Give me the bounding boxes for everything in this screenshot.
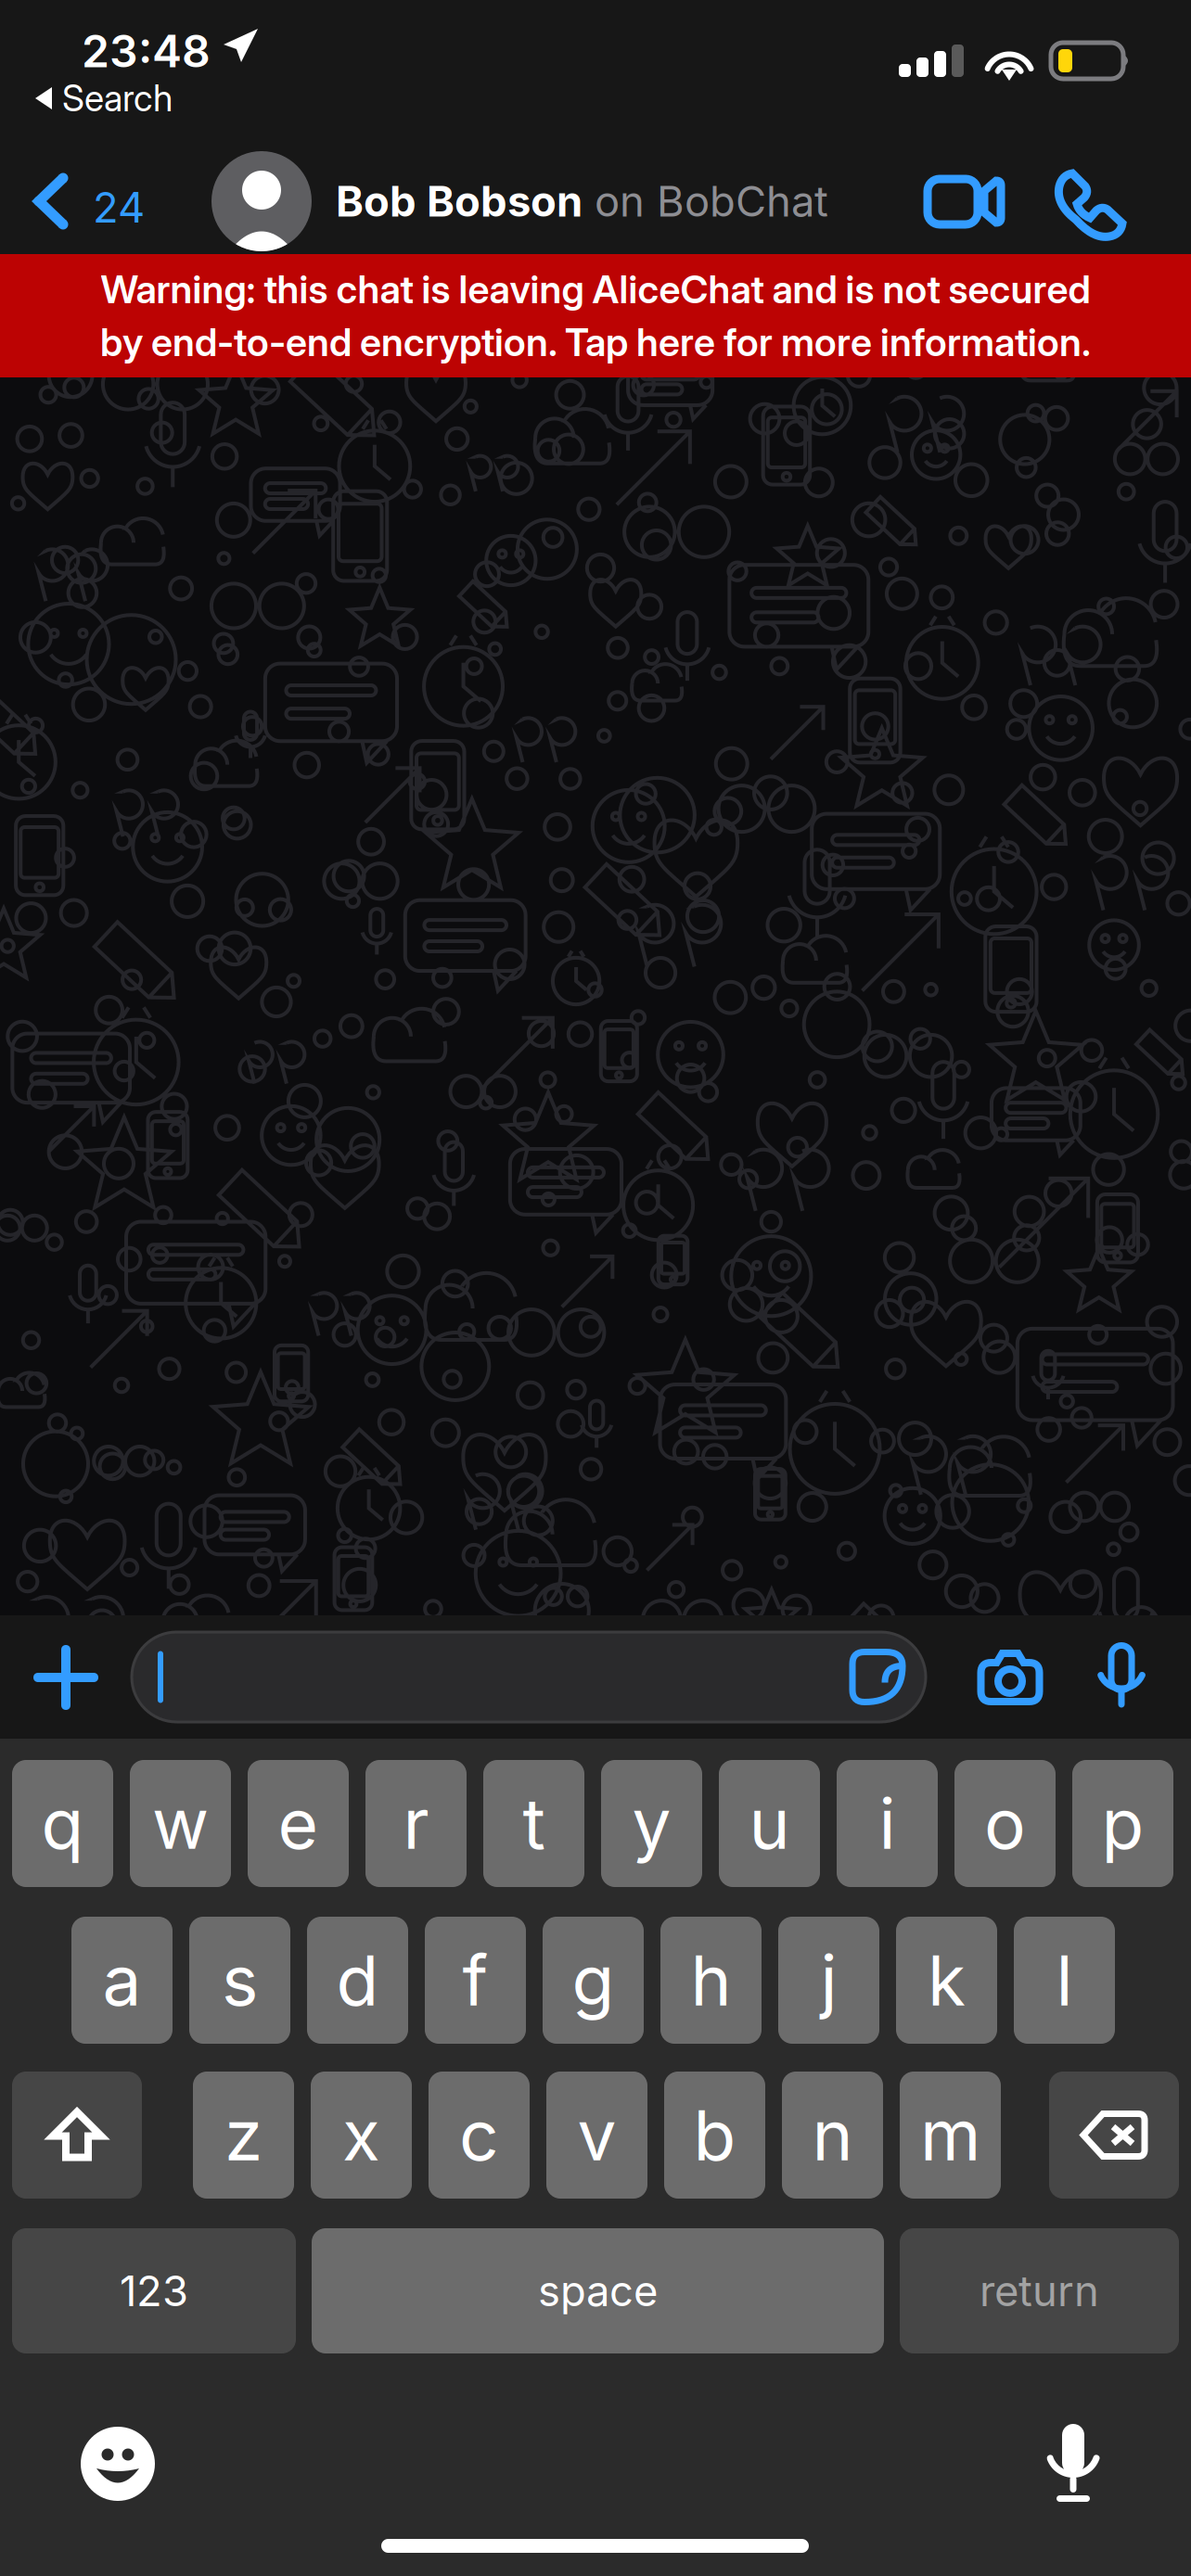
button[interactable]: Video call [905,149,1026,255]
staticText: on BobChat [583,176,828,227]
staticText: a [102,1938,141,2022]
button[interactable]: return [900,2228,1179,2353]
button[interactable]: f [425,1917,526,2044]
staticText: j [820,1938,837,2022]
button[interactable]: y [601,1760,702,1887]
button[interactable]: Attach [0,1615,132,1739]
staticText: o [984,1782,1026,1865]
staticText: by end-to-end encryption. Tap here for m… [100,319,1091,365]
button[interactable]: Voice call [1035,152,1146,258]
staticText: c [459,2093,499,2177]
button[interactable]: z [193,2072,294,2199]
staticText: return [980,2265,1099,2316]
staticText: 123 [120,2265,188,2316]
staticText: s [222,1938,258,2022]
button[interactable]: d [307,1917,408,2044]
button[interactable]: s [189,1917,290,2044]
staticText: i [879,1782,896,1865]
staticText: Warning: this chat is leaving AliceChat … [101,266,1090,312]
staticText: l [1056,1938,1073,2022]
staticText: space [538,2265,658,2316]
staticText: h [691,1938,731,2022]
button[interactable]: 24 [0,148,186,254]
staticText: z [224,2093,263,2177]
staticText: q [41,1782,84,1865]
staticText: r [403,1782,429,1865]
button[interactable]: l [1014,1917,1115,2044]
button[interactable]: Shift [12,2072,142,2199]
button[interactable]: n [782,2072,883,2199]
button[interactable]: i [837,1760,938,1887]
button[interactable]: Search [33,74,173,122]
button[interactable]: u [719,1760,820,1887]
staticText: n [812,2093,853,2177]
button[interactable]: o [954,1760,1056,1887]
staticText: p [1101,1782,1144,1865]
button[interactable]: r [365,1760,467,1887]
button[interactable]: e [248,1760,349,1887]
button[interactable]: Voice message [1070,1615,1172,1739]
button[interactable]: b [664,2072,765,2199]
staticText: t [523,1782,545,1865]
button[interactable]: Dictation [1008,2408,1138,2519]
button[interactable]: c [429,2072,530,2199]
staticText: d [336,1938,379,2022]
staticText: v [577,2093,616,2177]
staticText: w [152,1782,209,1865]
staticText: e [278,1782,319,1865]
staticText: g [572,1938,615,2022]
button[interactable]: x [311,2072,412,2199]
button[interactable]: g [543,1917,644,2044]
staticText: Search [62,77,173,120]
staticText: Bob Bobson [336,176,583,227]
button[interactable]: Bob Bobson [211,148,828,254]
button[interactable]: Camera [950,1615,1070,1739]
button[interactable]: Emoji keyboard [53,2408,183,2519]
button[interactable]: v [546,2072,647,2199]
staticText: 23:48 [82,24,211,78]
staticText: u [749,1782,790,1865]
button[interactable]: p [1072,1760,1173,1887]
button[interactable]: 123 [12,2228,296,2353]
button[interactable]: m [900,2072,1001,2199]
button[interactable]: space [312,2228,884,2353]
staticText: f [462,1938,488,2022]
staticText: b [693,2093,736,2177]
button[interactable]: w [130,1760,231,1887]
staticText: k [928,1938,966,2022]
button[interactable]: Delete [1049,2072,1179,2199]
button[interactable]: q [12,1760,113,1887]
button[interactable]: Stickers [829,1615,926,1739]
staticText: y [632,1782,671,1865]
staticText: 24 [93,182,145,233]
button[interactable]: k [896,1917,997,2044]
staticText: m [920,2093,980,2177]
button[interactable]: h [660,1917,762,2044]
button[interactable]: j [778,1917,879,2044]
button[interactable]: a [71,1917,173,2044]
staticText: x [342,2093,380,2177]
button[interactable]: t [483,1760,584,1887]
button[interactable]: Warning: this chat is leaving AliceChat … [0,254,1191,377]
